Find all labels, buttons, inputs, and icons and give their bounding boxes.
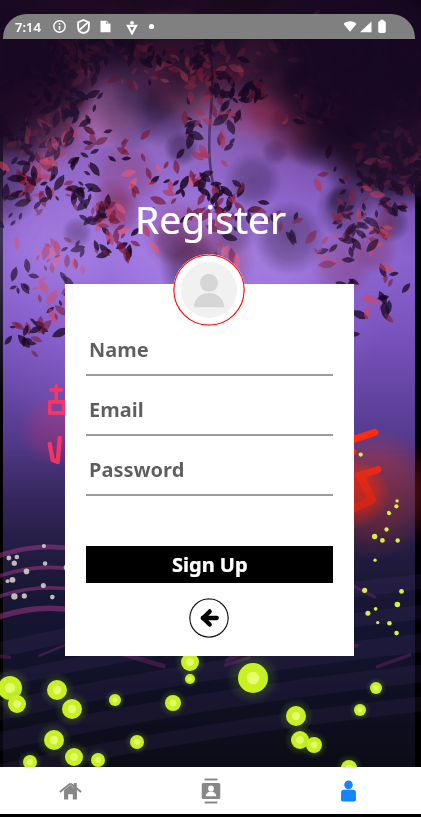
button[interactable]: Contacts (141, 767, 281, 814)
button[interactable]: Sign Up (86, 546, 333, 583)
button[interactable]: Profile (281, 767, 421, 814)
staticText: Email (89, 396, 144, 423)
staticText: Sign Up (172, 551, 248, 578)
staticText: Name (89, 336, 149, 363)
button[interactable]: Back (189, 598, 229, 638)
button[interactable]: Profile photo (173, 254, 245, 326)
button[interactable]: Home (0, 767, 141, 814)
staticText: Password (89, 456, 185, 483)
staticText: Register (135, 192, 287, 245)
staticText: 7:14 (15, 18, 41, 36)
